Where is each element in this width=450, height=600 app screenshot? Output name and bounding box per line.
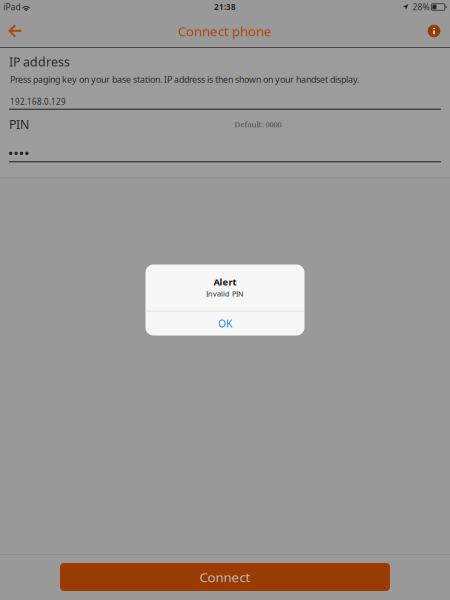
staticText: Alert	[213, 275, 236, 288]
staticText: Invalid PIN	[206, 289, 244, 299]
staticText: Default: 0000	[234, 119, 281, 129]
staticText: 192.168.0.129	[10, 96, 66, 107]
button[interactable]: Back	[0, 14, 30, 48]
staticText: 21:38	[214, 2, 236, 12]
staticText: Connect	[199, 568, 250, 586]
button[interactable]: Info	[418, 14, 450, 48]
staticText: Press paging key on your base station. I…	[10, 73, 359, 85]
staticText: PIN	[9, 116, 29, 133]
staticText: iPad	[3, 1, 20, 13]
button[interactable]: Connect	[60, 563, 390, 591]
staticText: Connect phone	[178, 22, 272, 40]
button[interactable]: OK	[145, 311, 304, 335]
staticText: OK	[218, 317, 232, 330]
staticText: IP address	[9, 53, 70, 70]
staticText: 28%	[412, 1, 429, 13]
